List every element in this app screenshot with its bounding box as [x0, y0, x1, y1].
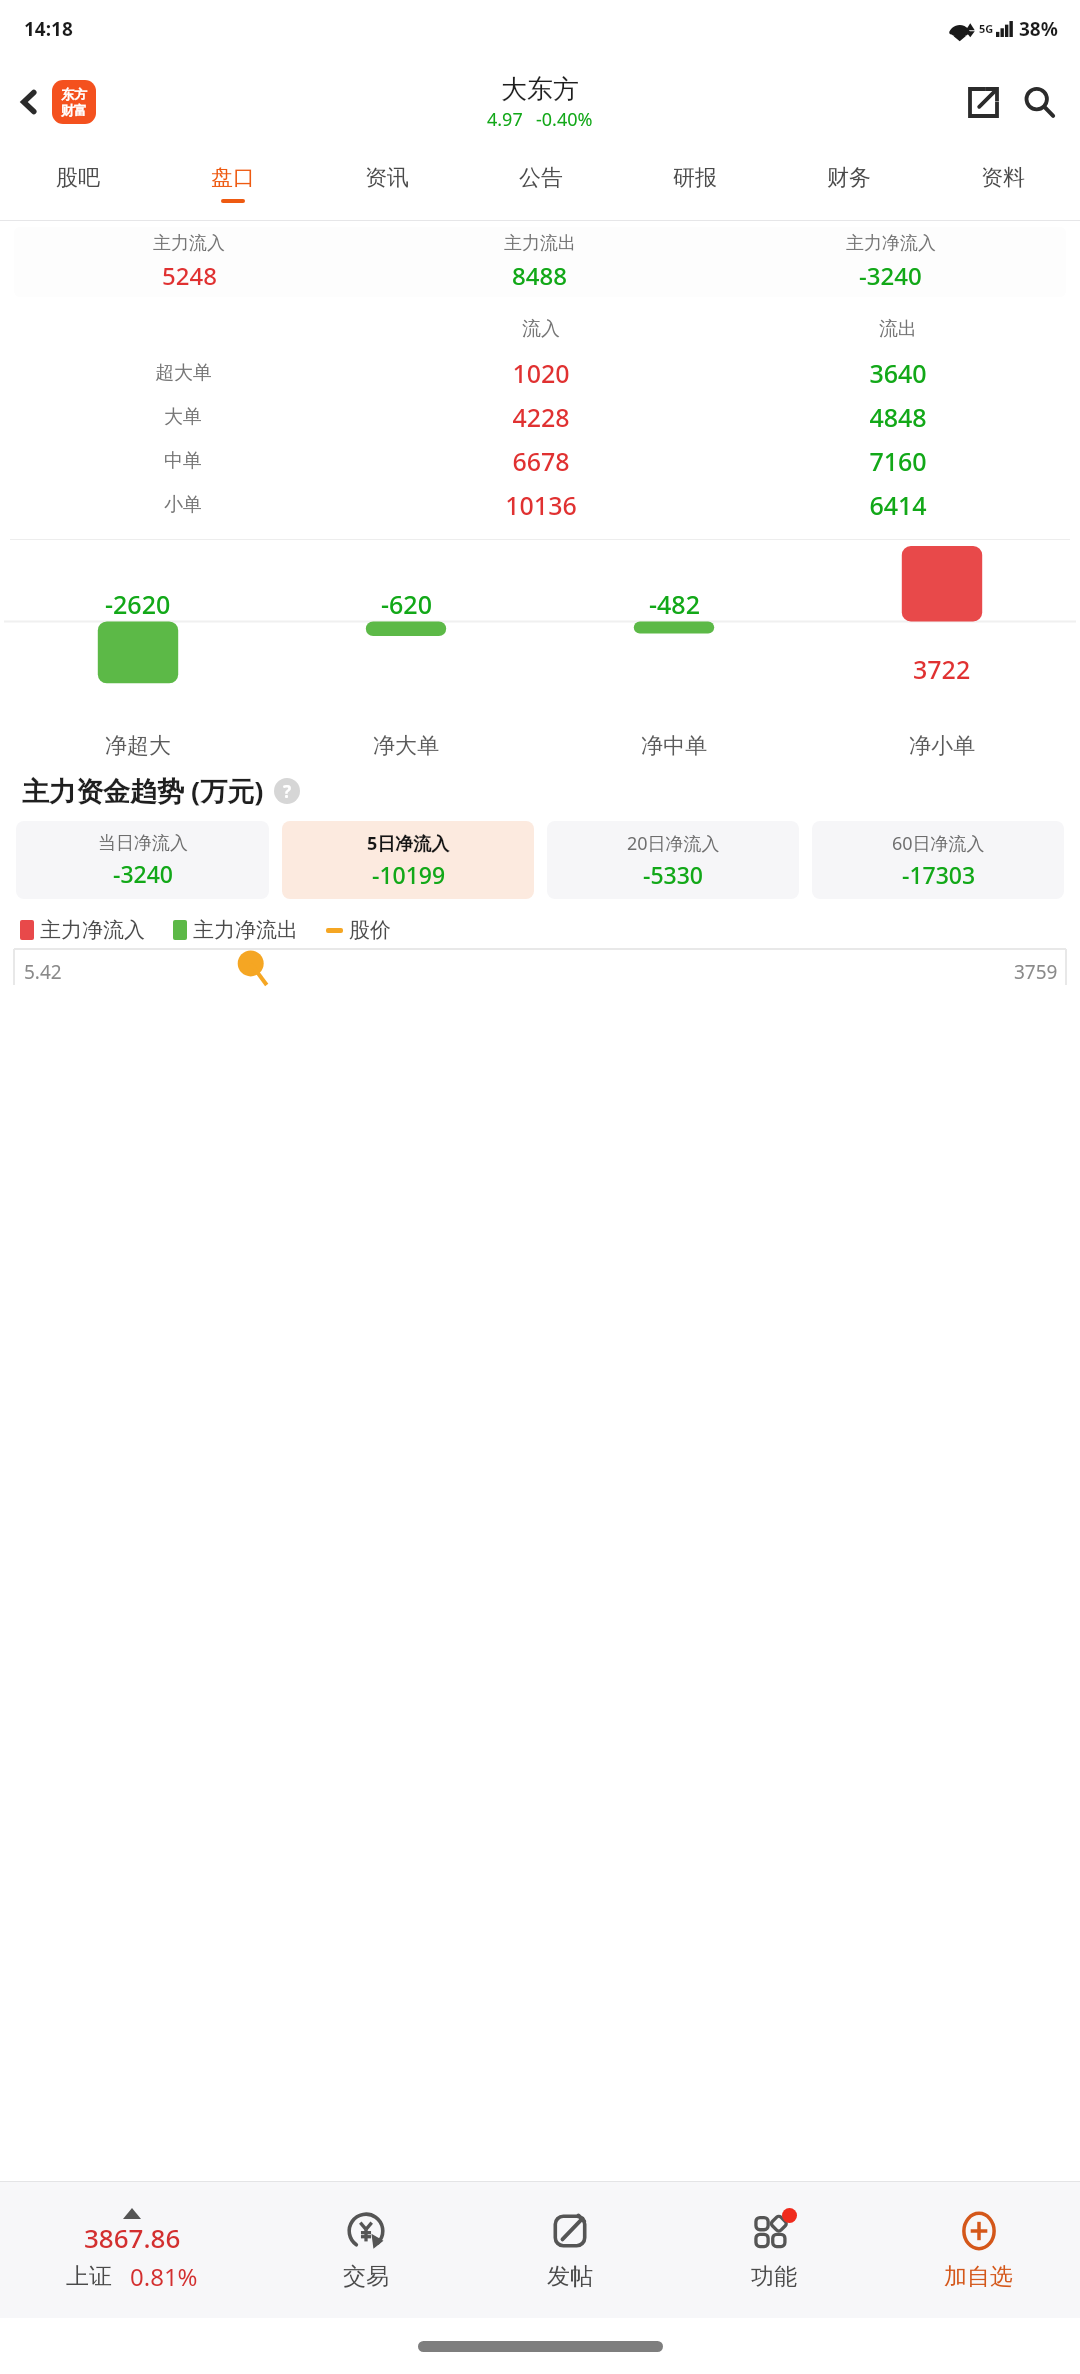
staticText: 主力净流出	[193, 917, 298, 943]
staticText: 1020	[512, 356, 570, 390]
staticText: 上证	[66, 2262, 112, 2291]
staticText: 主力净流入	[40, 917, 145, 943]
button[interactable]: 大单	[4, 395, 1076, 439]
staticText: 交易	[343, 2262, 389, 2291]
button[interactable]: 资讯	[310, 146, 464, 220]
button[interactable]: Help	[274, 778, 300, 804]
button[interactable]: Back	[6, 79, 52, 125]
button[interactable]: 60日净流入	[812, 821, 1064, 899]
staticText: 0.81%	[130, 2260, 198, 2293]
button[interactable]: 加自选	[876, 2182, 1080, 2318]
staticText: 净中单	[641, 732, 707, 760]
staticText: 20日净流入	[627, 831, 720, 856]
staticText: 主力流入	[153, 232, 225, 255]
button[interactable]: 3867.86	[0, 2182, 264, 2318]
staticText: -3240	[859, 259, 922, 292]
staticText: 流入	[522, 317, 560, 341]
button[interactable]: Share	[956, 75, 1010, 129]
staticText: 净小单	[909, 732, 975, 760]
staticText: -2620	[105, 587, 171, 621]
staticText: 超大单	[155, 361, 212, 385]
button[interactable]: 中单	[4, 439, 1076, 483]
button[interactable]: 发帖	[468, 2182, 672, 2318]
staticText: 4228	[512, 400, 570, 434]
staticText: 公告	[519, 164, 563, 192]
staticText: 东方	[61, 86, 87, 102]
button[interactable]: 当日净流入	[16, 821, 269, 899]
button[interactable]: 主力流入	[14, 227, 1066, 297]
button[interactable]: 小单	[4, 483, 1076, 527]
button[interactable]: 超大单	[4, 351, 1076, 395]
staticText: 资料	[981, 164, 1025, 192]
button[interactable]: East Money	[52, 80, 96, 124]
staticText: -3240	[113, 858, 174, 889]
button[interactable]: 财务	[772, 146, 926, 220]
staticText: 大单	[164, 405, 202, 429]
staticText: 大东方	[501, 73, 579, 106]
staticText: 股价	[349, 917, 391, 943]
staticText: 7160	[869, 444, 927, 478]
staticText: 14:18	[24, 16, 73, 42]
staticText: 10136	[505, 488, 577, 522]
staticText: 5G	[979, 21, 994, 36]
staticText: 功能	[751, 2262, 797, 2291]
staticText: 3867.86	[84, 2220, 181, 2255]
button[interactable]: 研报	[618, 146, 772, 220]
staticText: 股吧	[56, 164, 100, 192]
staticText: 4.97	[487, 107, 523, 132]
button[interactable]: 盘口	[155, 146, 310, 220]
staticText: -620	[381, 587, 432, 621]
button[interactable]: 功能	[672, 2182, 876, 2318]
button[interactable]: 交易	[264, 2182, 468, 2318]
staticText: 流出	[879, 317, 917, 341]
staticText: 60日净流入	[892, 831, 985, 856]
staticText: 4848	[869, 400, 927, 434]
button[interactable]: 公告	[464, 146, 618, 220]
staticText: 8488	[512, 259, 567, 292]
staticText: 盘口	[211, 164, 255, 192]
staticText: -10199	[372, 859, 446, 890]
button[interactable]: 5日净流入	[282, 821, 534, 899]
staticText: 5日净流入	[367, 831, 450, 856]
staticText: 5248	[162, 259, 217, 292]
staticText: -5330	[643, 859, 704, 890]
button[interactable]: 股吧	[0, 146, 155, 220]
staticText: 财富	[61, 102, 87, 118]
staticText: 小单	[164, 493, 202, 517]
staticText: 主力资金趋势 (万元)	[22, 772, 264, 809]
staticText: 发帖	[547, 2262, 593, 2291]
staticText: 净超大	[105, 732, 171, 760]
staticText: 主力净流入	[846, 232, 936, 255]
button[interactable]: 资料	[926, 146, 1080, 220]
staticText: 38%	[1019, 16, 1058, 42]
staticText: 3759	[1014, 959, 1058, 985]
staticText: -17303	[902, 859, 976, 890]
staticText: 3640	[869, 356, 927, 390]
staticText: 5.42	[24, 959, 62, 985]
staticText: 当日净流入	[98, 832, 188, 855]
button[interactable]: 20日净流入	[547, 821, 799, 899]
staticText: -0.40%	[536, 107, 593, 132]
staticText: 研报	[673, 164, 717, 192]
staticText: 6414	[869, 488, 927, 522]
button[interactable]: Search	[1010, 73, 1068, 131]
staticText: -482	[649, 587, 700, 621]
staticText: 加自选	[944, 2262, 1013, 2291]
staticText: 资讯	[365, 164, 409, 192]
staticText: 3722	[913, 652, 971, 686]
staticText: 6678	[512, 444, 570, 478]
staticText: 中单	[164, 449, 202, 473]
staticText: 主力流出	[504, 232, 576, 255]
staticText: 净大单	[373, 732, 439, 760]
staticText: 财务	[827, 164, 871, 192]
staticText: ?	[283, 780, 292, 803]
